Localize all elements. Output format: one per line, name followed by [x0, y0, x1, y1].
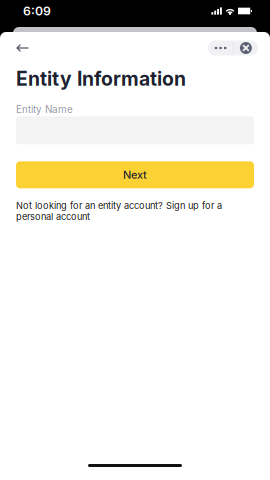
staticText: Entity Name: [16, 103, 73, 115]
staticText: Next: [123, 168, 147, 181]
button[interactable]: Not looking for an entity account? Sign …: [16, 200, 254, 222]
staticText: Entity Information: [16, 67, 186, 90]
button[interactable]: More options: [208, 40, 233, 55]
button[interactable]: Next: [16, 161, 254, 188]
button[interactable]: Close: [234, 40, 258, 55]
staticText: Not looking for an entity account? Sign …: [16, 200, 222, 222]
button[interactable]: Back: [8, 35, 37, 61]
staticText: 6:09: [23, 4, 51, 18]
